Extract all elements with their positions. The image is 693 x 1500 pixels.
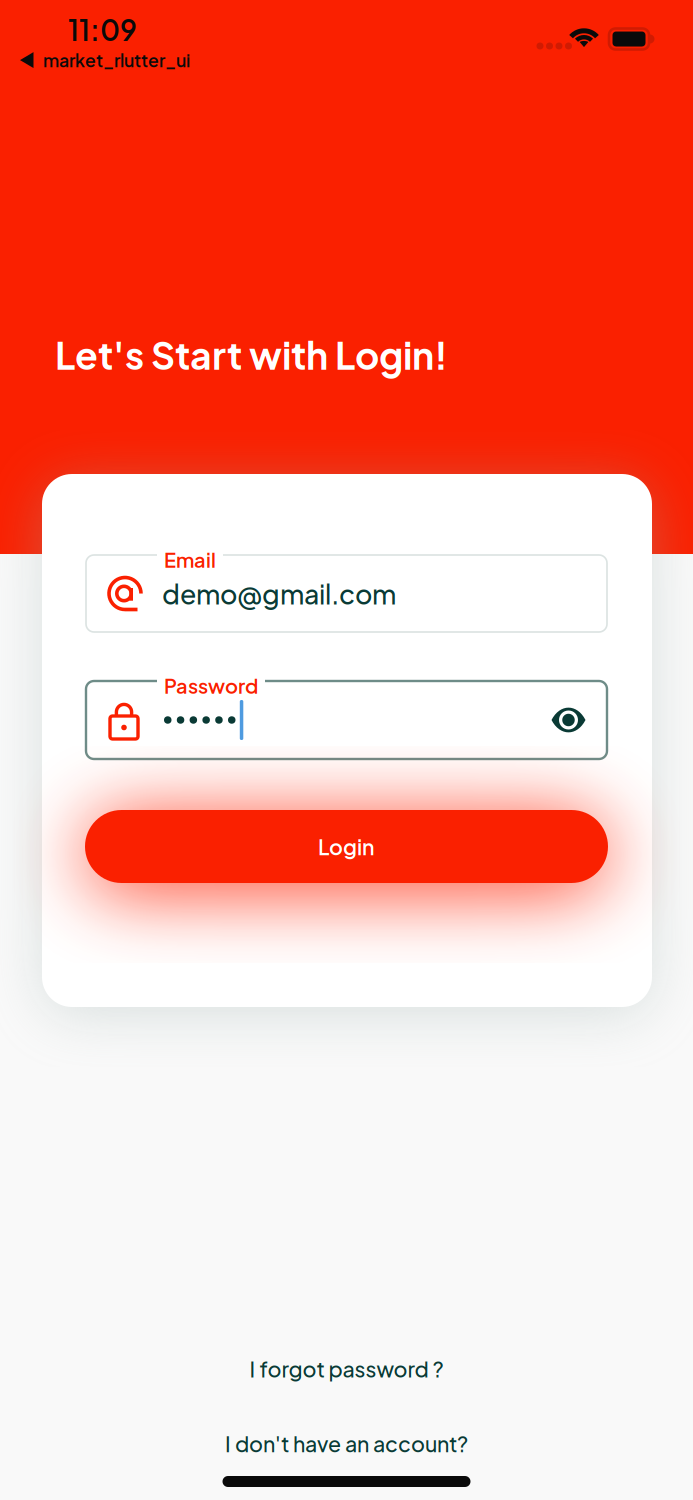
staticText: I don't have an account? bbox=[225, 1430, 468, 1457]
staticText: 11:09 bbox=[68, 12, 137, 47]
button[interactable]: I forgot password ? bbox=[237, 1343, 455, 1394]
staticText: Login bbox=[318, 833, 375, 860]
button[interactable]: I don't have an account? bbox=[213, 1418, 480, 1469]
staticText: Password bbox=[164, 673, 258, 698]
staticText: I forgot password ? bbox=[249, 1355, 443, 1382]
staticText: Let's Start with Login! bbox=[55, 331, 448, 378]
button[interactable]: Login bbox=[85, 810, 608, 883]
button[interactable]: Show password bbox=[546, 694, 607, 745]
button[interactable]: market_rlutter_ui bbox=[0, 0, 170, 32]
staticText: demo@gmail.com bbox=[162, 577, 396, 610]
staticText: Email bbox=[164, 547, 216, 572]
staticText: market_rlutter_ui bbox=[43, 49, 190, 71]
